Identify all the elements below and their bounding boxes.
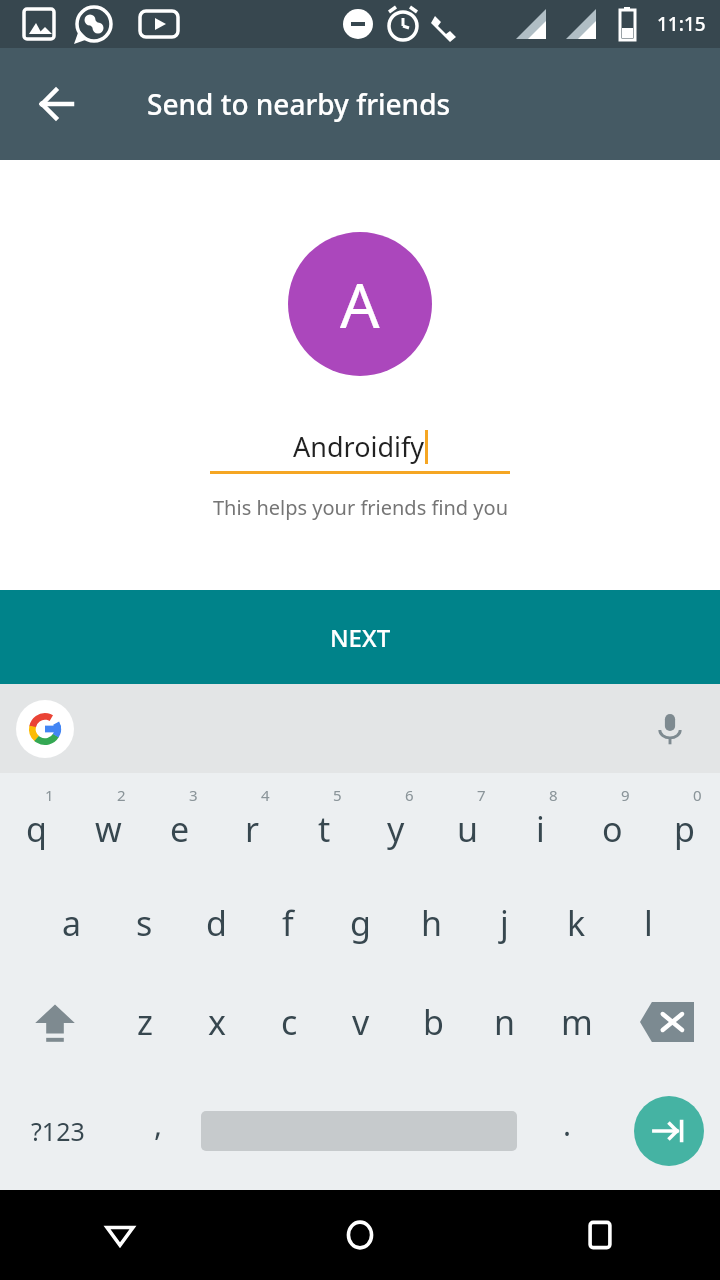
staticText: 5 [333, 785, 342, 805]
button[interactable]: x [181, 972, 253, 1071]
staticText: NEXT [330, 621, 391, 654]
button[interactable]: z [109, 972, 181, 1071]
staticText: This helps your friends find you [213, 494, 508, 521]
staticText: a [62, 900, 82, 946]
button[interactable]: Backspace [613, 972, 720, 1071]
button[interactable]: n [469, 972, 541, 1071]
staticText: v [352, 999, 370, 1045]
staticText: w [95, 806, 122, 852]
button[interactable]: . [517, 1071, 617, 1190]
staticText: f [282, 900, 294, 946]
button[interactable]: ?123 [0, 1071, 116, 1190]
staticText: Androidify [293, 428, 425, 465]
staticText: g [350, 900, 371, 946]
button[interactable]: d [180, 873, 252, 972]
staticText: t [318, 806, 331, 852]
button[interactable]: b [397, 972, 469, 1071]
button[interactable]: Recent apps [480, 1190, 720, 1280]
staticText: . [563, 1104, 572, 1145]
button[interactable]: 1 [0, 773, 72, 873]
staticText: 7 [477, 785, 486, 805]
button[interactable]: , [116, 1071, 201, 1190]
staticText: 1 [45, 785, 54, 805]
staticText: h [421, 900, 443, 946]
button[interactable]: Voice input [642, 701, 698, 757]
button[interactable]: f [252, 873, 324, 972]
staticText: 0 [693, 785, 702, 805]
staticText: 8 [549, 785, 558, 805]
button[interactable]: Shift [0, 972, 109, 1071]
staticText: o [602, 806, 623, 852]
button[interactable]: g [324, 873, 396, 972]
staticText: A [340, 262, 380, 346]
staticText: 4 [261, 785, 270, 805]
button[interactable]: Back [0, 1190, 240, 1280]
button[interactable]: Google search [16, 700, 74, 758]
button[interactable]: l [612, 873, 684, 972]
button[interactable]: 3 [144, 773, 216, 873]
staticText: 2 [117, 785, 126, 805]
button[interactable]: 8 [504, 773, 576, 873]
button[interactable]: 2 [72, 773, 144, 873]
staticText: n [494, 999, 516, 1045]
staticText: q [26, 806, 47, 852]
button[interactable]: h [396, 873, 468, 972]
staticText: m [561, 999, 593, 1045]
button[interactable]: NEXT [0, 590, 720, 684]
staticText: p [674, 806, 695, 852]
staticText: 3 [189, 785, 198, 805]
staticText: s [136, 900, 153, 946]
button[interactable]: 4 [216, 773, 288, 873]
staticText: Send to nearby friends [147, 85, 451, 123]
staticText: j [500, 900, 509, 946]
button[interactable]: m [541, 972, 613, 1071]
button[interactable]: 9 [576, 773, 648, 873]
staticText: 11:15 [657, 11, 706, 37]
button[interactable]: Home [240, 1190, 480, 1280]
staticText: z [137, 999, 153, 1045]
staticText: l [644, 900, 653, 946]
staticText: 6 [405, 785, 414, 805]
button[interactable]: s [108, 873, 180, 972]
staticText: r [245, 806, 260, 852]
button[interactable]: 6 [360, 773, 432, 873]
button[interactable]: 0 [648, 773, 720, 873]
button[interactable]: a [36, 873, 108, 972]
staticText: y [387, 806, 405, 852]
button[interactable]: k [540, 873, 612, 972]
staticText: ?123 [31, 1114, 85, 1148]
staticText: x [208, 999, 226, 1045]
staticText: , [154, 1104, 163, 1145]
staticText: i [536, 806, 545, 852]
button[interactable]: Space [201, 1071, 517, 1190]
button[interactable]: Back [22, 70, 90, 138]
staticText: k [567, 900, 586, 946]
button[interactable]: c [253, 972, 325, 1071]
button[interactable]: j [468, 873, 540, 972]
button[interactable]: A [288, 232, 432, 376]
button[interactable]: Enter [617, 1071, 720, 1190]
button[interactable]: 7 [432, 773, 504, 873]
staticText: 9 [621, 785, 630, 805]
staticText: e [170, 806, 190, 852]
button[interactable]: 5 [288, 773, 360, 873]
staticText: c [281, 999, 298, 1045]
button[interactable]: v [325, 972, 397, 1071]
staticText: b [423, 999, 444, 1045]
staticText: u [457, 806, 479, 852]
staticText: d [206, 900, 227, 946]
